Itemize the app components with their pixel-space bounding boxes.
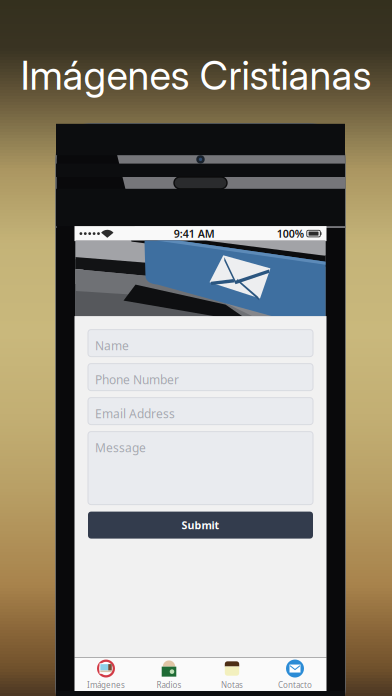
staticText: Contacto xyxy=(278,679,312,690)
staticText: Name xyxy=(95,338,129,353)
button[interactable]: Imágenes xyxy=(74,654,137,694)
staticText: Notas xyxy=(221,679,243,690)
button[interactable]: Contacto xyxy=(263,654,326,694)
staticText: Phone Number xyxy=(95,372,179,387)
button[interactable]: Name xyxy=(88,330,313,357)
staticText: Imágenes Cristianas xyxy=(20,51,371,99)
staticText: 9:41 AM xyxy=(174,226,215,241)
staticText: 100% xyxy=(277,226,304,241)
staticText: Radios xyxy=(156,679,181,690)
button[interactable]: Message xyxy=(88,432,313,505)
button[interactable]: Notas xyxy=(200,654,263,694)
staticText: Submit xyxy=(181,518,219,532)
button[interactable]: Submit xyxy=(88,512,313,539)
button[interactable]: Email Address xyxy=(88,398,313,425)
button[interactable]: Phone Number xyxy=(88,364,313,391)
staticText: Message xyxy=(95,440,146,455)
staticText: Imágenes xyxy=(87,679,125,690)
staticText: Email Address xyxy=(95,406,175,421)
button[interactable]: Radios xyxy=(137,654,200,694)
